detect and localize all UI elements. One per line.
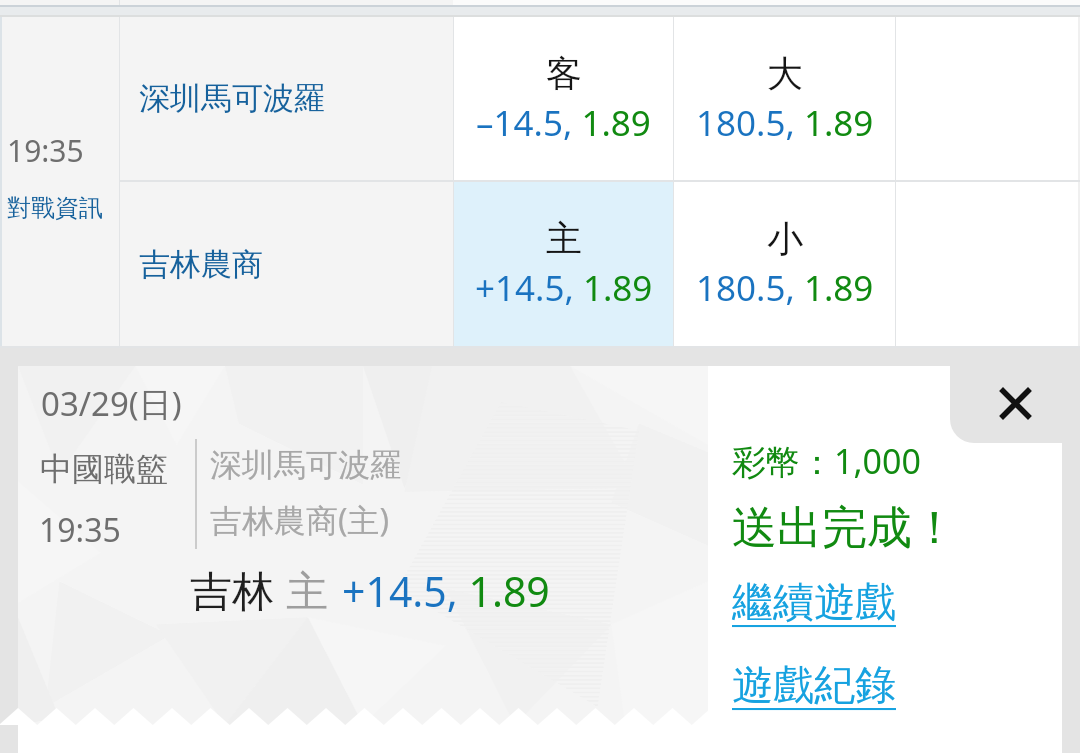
button[interactable]: 小 xyxy=(674,182,895,346)
button[interactable]: 繼續遊戲 xyxy=(732,575,896,631)
staticText: 小 xyxy=(767,216,803,261)
staticText: 客 xyxy=(546,51,582,96)
staticText: 吉林 xyxy=(190,566,274,619)
staticText: 吉林農商 xyxy=(139,245,263,284)
staticText: 180.5, 1.89 xyxy=(696,99,874,147)
button[interactable]: 深圳馬可波羅 xyxy=(120,17,453,180)
staticText: 主 xyxy=(286,566,328,619)
staticText: 19:35 xyxy=(39,508,121,552)
staticText: 彩幣：1,000 xyxy=(732,438,921,484)
button[interactable]: 遊戲紀錄 xyxy=(732,658,896,714)
button[interactable]: 對戰資訊 xyxy=(2,187,119,225)
staticText: 主 xyxy=(546,216,582,261)
staticText: 19:35 xyxy=(7,130,84,171)
button[interactable]: 客 xyxy=(454,17,673,180)
staticText: 對戰資訊 xyxy=(7,193,103,223)
staticText: –14.5, 1.89 xyxy=(476,99,651,147)
button[interactable]: Close xyxy=(950,348,1080,443)
staticText: 深圳馬可波羅 xyxy=(210,445,402,485)
staticText: 大 xyxy=(767,51,803,96)
staticText: 吉林農商(主) xyxy=(210,498,390,542)
staticText: 送出完成！ xyxy=(732,500,957,557)
staticText: 深圳馬可波羅 xyxy=(139,79,325,118)
button[interactable]: 大 xyxy=(674,17,895,180)
staticText: 03/29(日) xyxy=(41,381,182,426)
button[interactable]: 吉林農商 xyxy=(120,182,453,346)
staticText: +14.5, 1.89 xyxy=(475,264,653,312)
staticText: 180.5, 1.89 xyxy=(696,264,874,312)
button[interactable]: 主 xyxy=(454,182,673,346)
staticText: 遊戲紀錄 xyxy=(732,660,896,712)
staticText: 中國職籃 xyxy=(40,449,168,489)
staticText: +14.5, 1.89 xyxy=(342,563,550,619)
staticText: 繼續遊戲 xyxy=(732,577,896,629)
